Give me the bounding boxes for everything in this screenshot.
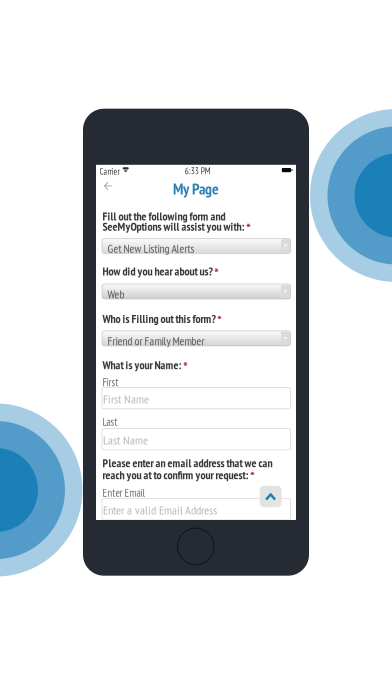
staticText: * bbox=[217, 311, 221, 329]
staticText: 6:33 PM bbox=[185, 165, 211, 177]
button[interactable]: First Name bbox=[102, 387, 291, 409]
staticText: What is your Name: bbox=[103, 358, 182, 372]
staticText: reach you at to confirm your request: bbox=[103, 467, 249, 482]
staticText: Web bbox=[107, 287, 124, 302]
button[interactable]: Enter a valid Email Address bbox=[102, 498, 291, 520]
staticText: Enter Email bbox=[103, 486, 145, 500]
staticText: Last bbox=[103, 415, 118, 429]
staticText: My Page bbox=[173, 179, 219, 199]
staticText: How did you hear about us? bbox=[103, 264, 213, 279]
button[interactable]: Scroll to top bbox=[260, 486, 282, 507]
staticText: Who is Filling out this form? bbox=[103, 311, 216, 326]
staticText: Enter a valid Email Address bbox=[103, 502, 217, 518]
staticText: SeeMyOptions will assist you with: bbox=[103, 219, 245, 234]
button[interactable]: Back bbox=[97, 176, 119, 196]
button[interactable]: Web bbox=[102, 284, 291, 299]
button[interactable]: Get New Listing Alerts bbox=[102, 238, 291, 253]
button[interactable]: Friend or Family Member bbox=[102, 331, 291, 346]
staticText: Friend or Family Member bbox=[107, 334, 204, 348]
staticText: Fill out the following form and bbox=[103, 209, 226, 224]
staticText: Carrier bbox=[99, 166, 119, 177]
staticText: Get New Listing Alerts bbox=[107, 241, 194, 256]
staticText: * bbox=[214, 264, 218, 281]
staticText: Please enter an email address that we ca… bbox=[103, 455, 273, 470]
staticText: * bbox=[183, 358, 187, 375]
staticText: First bbox=[103, 375, 119, 389]
staticText: First Name bbox=[103, 391, 149, 407]
staticText: * bbox=[246, 219, 250, 237]
staticText: Last Name bbox=[103, 432, 148, 448]
staticText: * bbox=[250, 467, 254, 485]
button[interactable]: Last Name bbox=[102, 428, 291, 450]
